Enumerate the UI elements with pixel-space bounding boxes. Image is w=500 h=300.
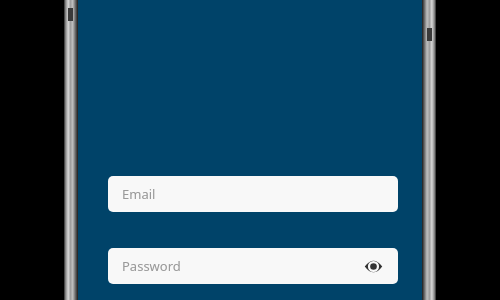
button[interactable]: Show password (362, 255, 384, 277)
button[interactable]: Password (108, 248, 398, 284)
button[interactable]: Email (108, 176, 398, 212)
staticText: Email (122, 185, 384, 203)
staticText: Password (122, 257, 362, 275)
